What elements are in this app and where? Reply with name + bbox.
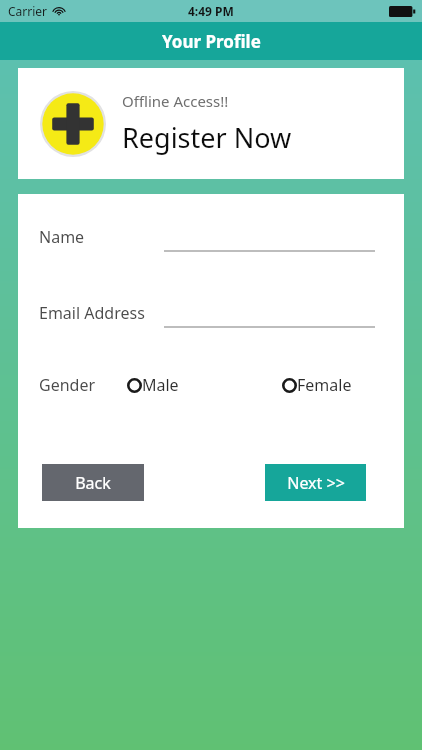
staticText: Female [297, 374, 352, 396]
staticText: Gender [39, 374, 96, 396]
button[interactable]: Female [282, 374, 352, 396]
button[interactable]: Male [127, 374, 179, 396]
staticText: Email Address [39, 302, 145, 324]
staticText: 4:49 PM [188, 3, 234, 19]
staticText: Register Now [122, 119, 292, 156]
button[interactable]: Back [42, 464, 144, 501]
staticText: Male [142, 374, 179, 396]
staticText: Offline Access!! [122, 91, 229, 111]
button[interactable]: Next >> [265, 464, 366, 501]
staticText: Carrier [8, 3, 48, 19]
staticText: Next >> [287, 472, 345, 494]
staticText: Name [39, 226, 85, 248]
staticText: Your Profile [162, 30, 261, 53]
staticText: Back [75, 472, 111, 494]
